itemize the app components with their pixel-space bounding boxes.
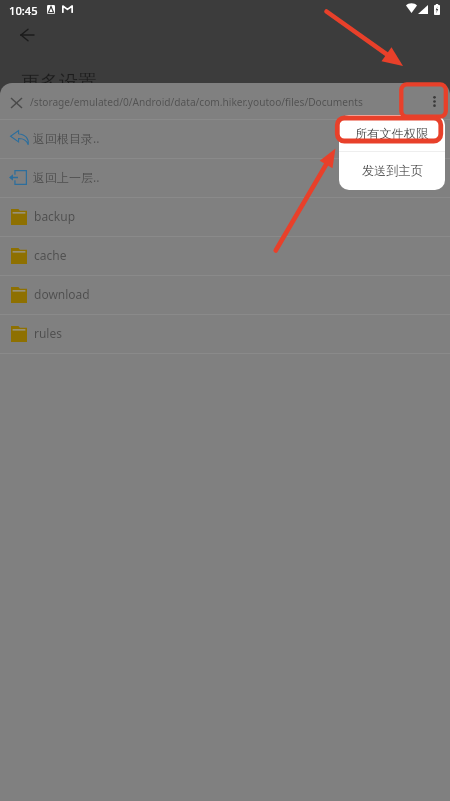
button[interactable]: rules bbox=[0, 315, 450, 353]
staticText: backup bbox=[34, 208, 76, 224]
button[interactable]: 返回根目录.. bbox=[0, 120, 450, 158]
staticText: 所有文件权限 bbox=[355, 126, 429, 141]
staticText: cache bbox=[34, 247, 67, 263]
button[interactable]: cache bbox=[0, 237, 450, 275]
staticText: 返回根目录.. bbox=[33, 130, 100, 146]
button[interactable]: More options bbox=[422, 89, 446, 113]
button[interactable]: Close bbox=[4, 91, 28, 115]
button[interactable]: 所有文件权限 bbox=[339, 115, 445, 151]
button[interactable]: Back bbox=[10, 18, 44, 52]
staticText: 更多设置 bbox=[21, 71, 97, 95]
staticText: /storage/emulated/0/Android/data/com.hik… bbox=[30, 95, 363, 109]
staticText: 发送到主页 bbox=[362, 163, 423, 178]
button[interactable]: backup bbox=[0, 198, 450, 236]
staticText: rules bbox=[34, 325, 62, 341]
button[interactable]: 返回上一层.. bbox=[0, 159, 450, 197]
button[interactable]: 发送到主页 bbox=[339, 152, 445, 190]
staticText: 10:45 bbox=[9, 3, 38, 18]
staticText: 返回上一层.. bbox=[33, 169, 100, 185]
button[interactable]: download bbox=[0, 276, 450, 314]
staticText: download bbox=[34, 286, 90, 302]
